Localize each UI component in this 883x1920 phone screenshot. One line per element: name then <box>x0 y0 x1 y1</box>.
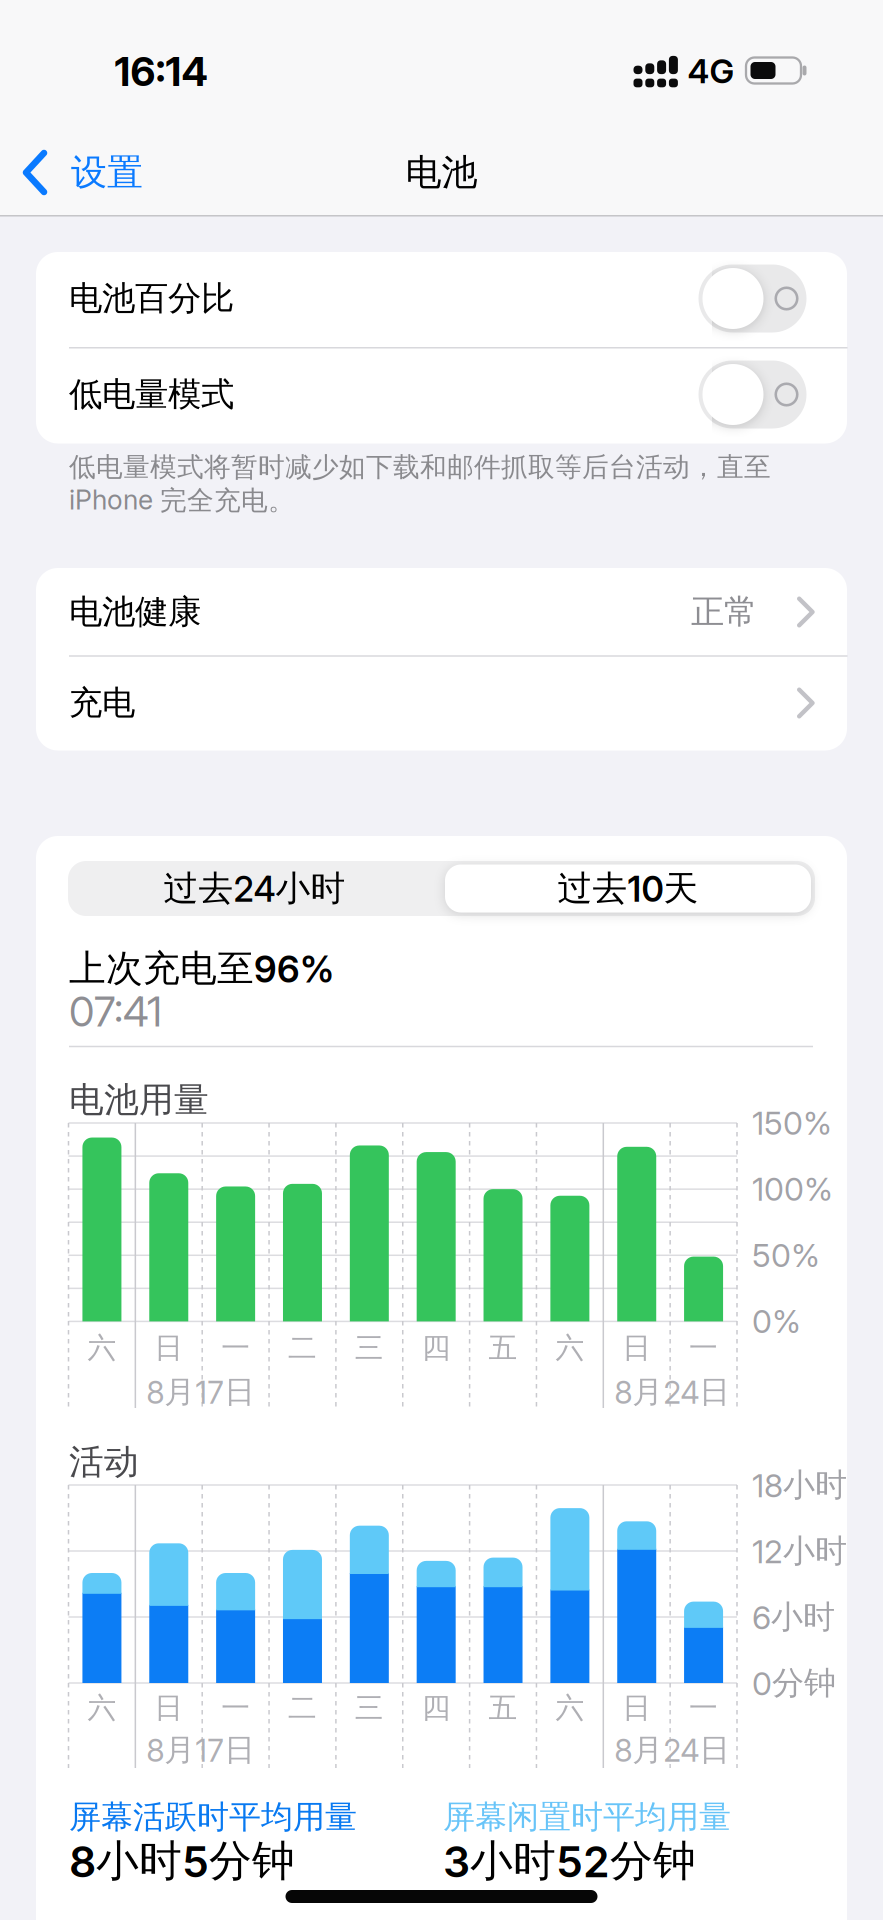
staticText: 12小时 <box>752 1531 847 1571</box>
staticText: 五 <box>488 1690 517 1726</box>
staticText: 四 <box>422 1690 451 1726</box>
staticText: 日 <box>154 1690 183 1726</box>
staticText: 电池百分比 <box>69 277 234 319</box>
staticText: 日 <box>622 1690 651 1726</box>
staticText: 8月17日 <box>146 1731 255 1769</box>
button[interactable]: 设置 <box>22 137 182 207</box>
staticText: 四 <box>422 1330 451 1366</box>
staticText: 一 <box>689 1690 718 1726</box>
staticText: 六 <box>555 1690 584 1726</box>
staticText: 二 <box>288 1330 317 1366</box>
staticText: 150% <box>752 1104 832 1142</box>
button[interactable]: 电池健康 <box>36 568 847 656</box>
button[interactable]: 电池百分比 <box>36 251 847 346</box>
button[interactable]: 过去24小时 <box>69 861 439 916</box>
staticText: 6小时 <box>752 1597 835 1637</box>
button[interactable]: 充电 <box>36 659 847 747</box>
staticText: 屏幕闲置时平均用量 <box>443 1797 731 1837</box>
staticText: 一 <box>221 1690 250 1726</box>
staticText: 8月24日 <box>614 1373 730 1411</box>
staticText: 活动 <box>69 1440 139 1484</box>
staticText: 50% <box>752 1236 820 1275</box>
staticText: 一 <box>689 1330 718 1366</box>
staticText: 一 <box>221 1330 250 1366</box>
staticText: 4G <box>687 51 734 91</box>
staticText: 五 <box>488 1330 517 1366</box>
staticText: 三 <box>355 1690 384 1726</box>
staticText: 六 <box>87 1690 116 1726</box>
button[interactable]: 低电量模式 <box>36 347 847 442</box>
staticText: 日 <box>622 1330 651 1366</box>
staticText: 电池 <box>405 150 477 195</box>
staticText: 0% <box>752 1302 801 1341</box>
staticText: 正常 <box>691 591 757 633</box>
staticText: 电池健康 <box>69 591 201 633</box>
staticText: 8月17日 <box>146 1373 255 1411</box>
staticText: 16:14 <box>114 47 207 96</box>
staticText: 三 <box>355 1330 384 1366</box>
staticText: 六 <box>87 1330 116 1366</box>
staticText: 过去24小时 <box>163 867 345 910</box>
staticText: 8小时5分钟 <box>69 1834 295 1888</box>
staticText: 六 <box>555 1330 584 1366</box>
staticText: 8月24日 <box>614 1731 730 1769</box>
button[interactable]: 过去10天 <box>445 861 811 916</box>
staticText: 100% <box>752 1170 833 1208</box>
staticText: 二 <box>288 1690 317 1726</box>
staticText: 过去10天 <box>557 867 698 910</box>
staticText: 屏幕活跃时平均用量 <box>69 1797 357 1837</box>
staticText: 充电 <box>69 682 135 724</box>
staticText: 18小时 <box>752 1465 847 1505</box>
staticText: 低电量模式 <box>69 373 234 415</box>
staticText: 电池用量 <box>69 1078 209 1122</box>
staticText: 日 <box>154 1330 183 1366</box>
staticText: 低电量模式将暂时减少如下载和邮件抓取等后台活动，直至 <box>69 450 771 484</box>
staticText: 3小时52分钟 <box>443 1834 696 1888</box>
staticText: 设置 <box>71 150 143 195</box>
staticText: iPhone 完全充电。 <box>69 484 295 517</box>
staticText: 上次充电至96% <box>69 945 334 992</box>
staticText: 0分钟 <box>752 1663 836 1703</box>
staticText: 07:41 <box>69 986 162 1036</box>
